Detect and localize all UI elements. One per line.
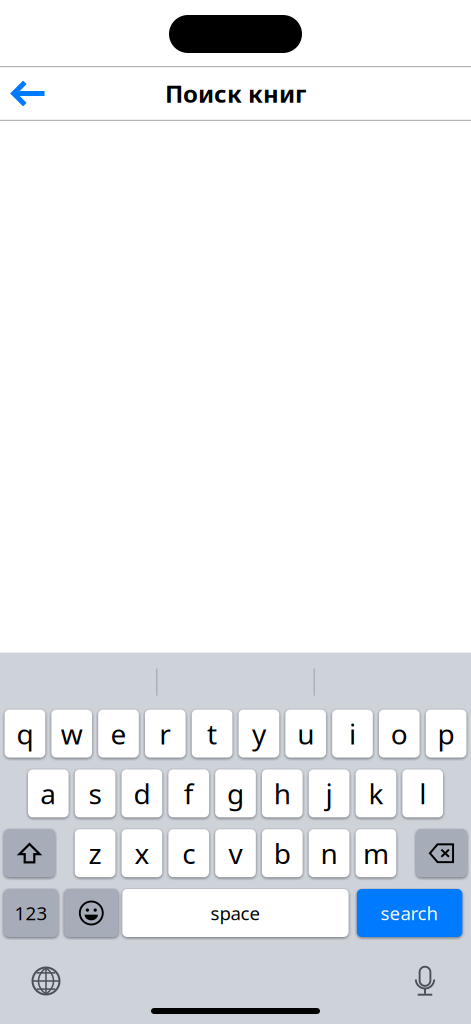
staticText: w [61, 715, 83, 752]
staticText: Поиск книг [165, 78, 306, 109]
button[interactable]: search [357, 889, 462, 937]
staticText: space [210, 901, 260, 925]
button[interactable]: h [262, 769, 303, 817]
button[interactable]: y [239, 710, 279, 758]
button[interactable]: n [309, 829, 349, 877]
button[interactable]: Numbers [4, 889, 58, 937]
staticText: s [89, 775, 102, 812]
button[interactable]: Delete [416, 829, 467, 877]
button[interactable]: Dictation [403, 959, 447, 1003]
button[interactable]: s [75, 769, 115, 817]
button[interactable]: e [98, 710, 139, 758]
button[interactable]: z [75, 829, 115, 877]
staticText: i [349, 715, 356, 752]
staticText: d [133, 775, 150, 812]
button[interactable]: t [192, 710, 232, 758]
button[interactable]: o [379, 710, 420, 758]
staticText: h [274, 775, 291, 812]
staticText: n [321, 835, 338, 872]
staticText: 123 [14, 901, 47, 925]
button[interactable]: l [402, 769, 443, 817]
button[interactable]: f [168, 769, 209, 817]
staticText: b [274, 835, 291, 872]
staticText: f [184, 775, 194, 812]
button[interactable]: b [262, 829, 303, 877]
staticText: t [207, 715, 217, 752]
button[interactable]: k [356, 769, 396, 817]
button[interactable]: j [309, 769, 349, 817]
staticText: k [368, 775, 383, 812]
staticText: g [227, 775, 244, 812]
button[interactable]: Back [0, 66, 60, 121]
button[interactable]: d [122, 769, 162, 817]
staticText: search [381, 901, 439, 925]
staticText: y [252, 715, 266, 752]
staticText: o [391, 715, 408, 752]
button[interactable]: a [28, 769, 69, 817]
button[interactable]: x [122, 829, 162, 877]
button[interactable]: r [145, 710, 186, 758]
button[interactable]: m [356, 829, 396, 877]
button[interactable]: c [168, 829, 209, 877]
staticText: m [363, 835, 389, 872]
button[interactable]: q [5, 710, 45, 758]
button[interactable]: Emoji [64, 889, 118, 937]
staticText: v [228, 835, 242, 872]
button[interactable]: Shift [4, 829, 55, 877]
staticText: q [16, 715, 33, 752]
button[interactable]: w [51, 710, 92, 758]
staticText: c [182, 835, 195, 872]
staticText: r [159, 715, 171, 752]
staticText: j [326, 775, 333, 812]
button[interactable]: space [122, 889, 349, 937]
staticText: e [110, 715, 126, 752]
button[interactable]: Next keyboard [24, 959, 68, 1003]
staticText: u [297, 715, 314, 752]
staticText: a [40, 775, 56, 812]
button[interactable]: u [285, 710, 326, 758]
staticText: x [134, 835, 149, 872]
button[interactable]: p [426, 710, 466, 758]
staticText: l [419, 775, 426, 812]
button[interactable]: v [215, 829, 256, 877]
button[interactable]: i [332, 710, 373, 758]
button[interactable]: g [215, 769, 256, 817]
staticText: z [89, 835, 102, 872]
staticText: p [438, 715, 455, 752]
